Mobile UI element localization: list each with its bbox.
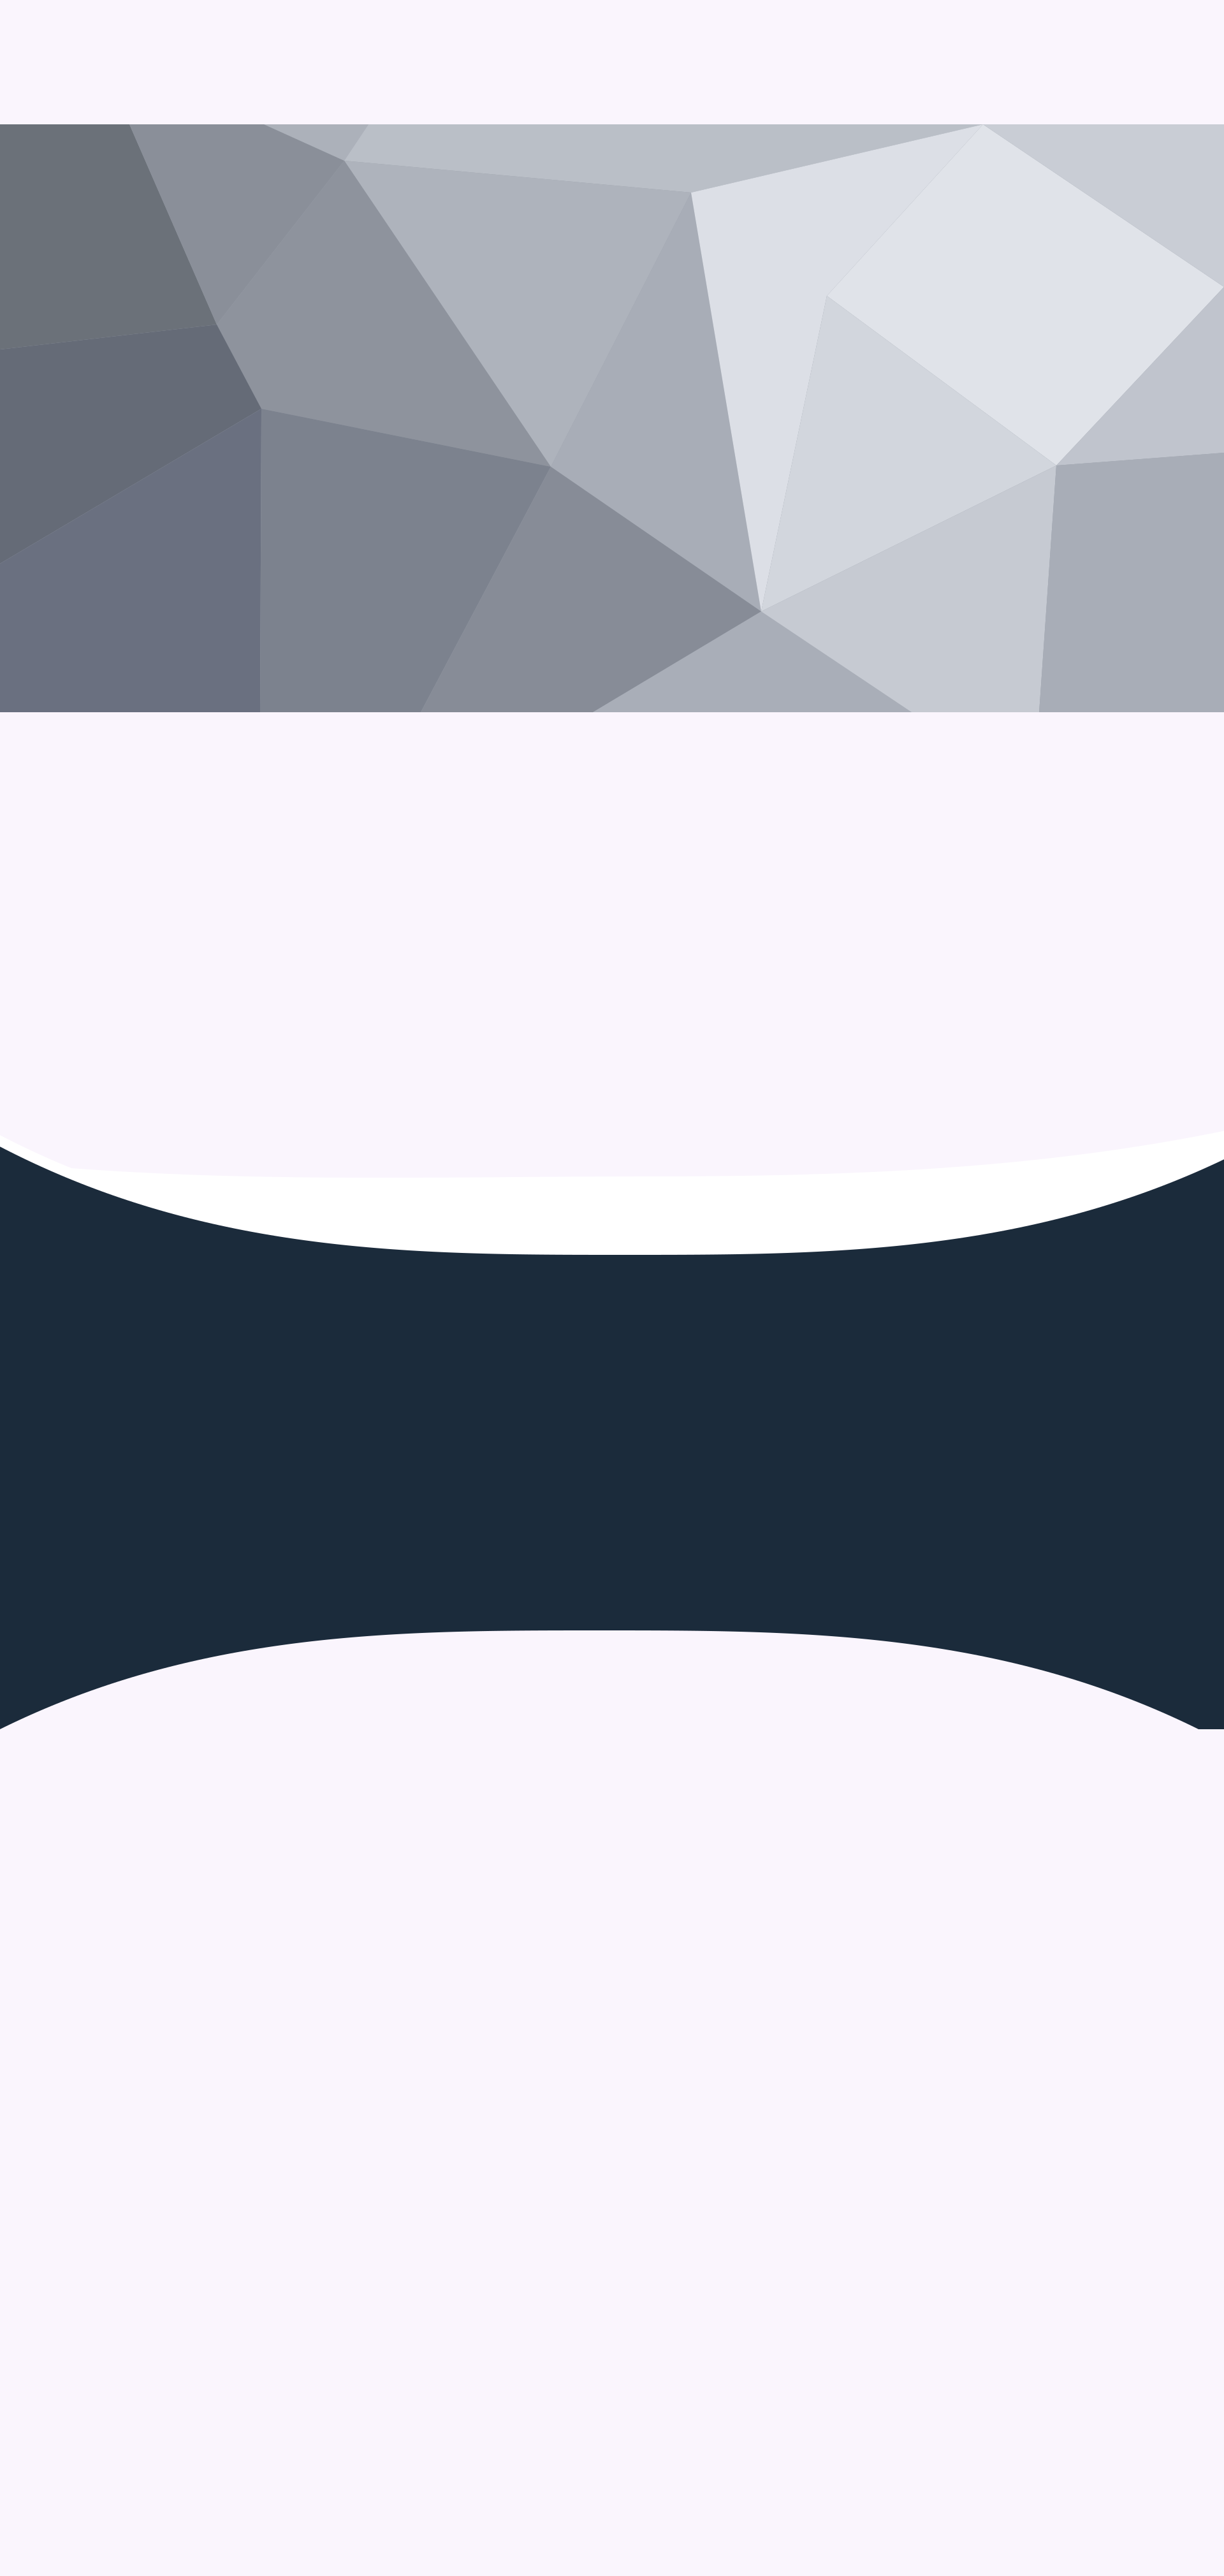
button[interactable]: Featured banner bbox=[0, 124, 1224, 712]
button[interactable]: Feature panel bbox=[0, 1129, 1224, 1734]
